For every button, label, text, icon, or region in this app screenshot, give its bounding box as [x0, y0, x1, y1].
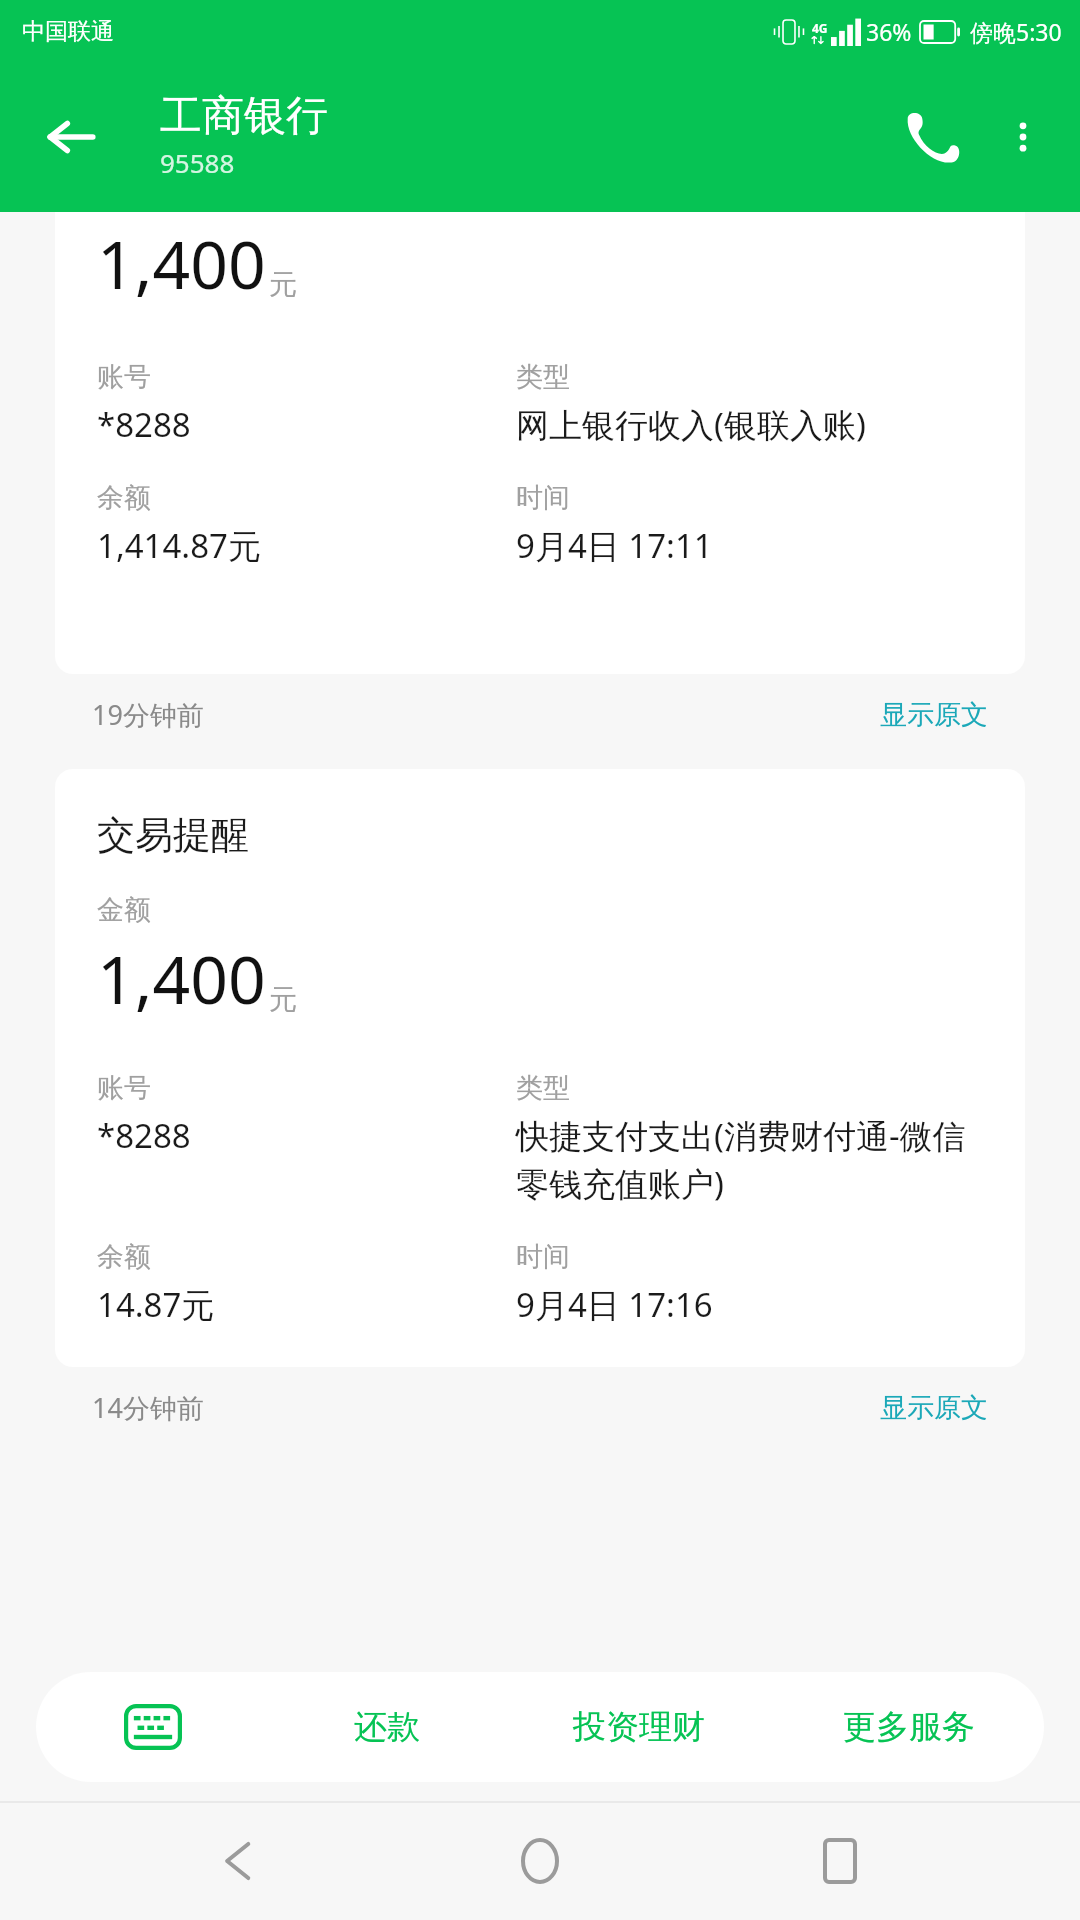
- staticText: 网上银行收入(银联入账): [516, 402, 866, 447]
- staticText: 投资理财: [573, 1706, 705, 1748]
- button[interactable]: Home: [480, 1802, 600, 1920]
- button[interactable]: 还款: [270, 1672, 504, 1782]
- button[interactable]: 投资理财: [504, 1672, 774, 1782]
- staticText: 9月4日 17:11: [516, 523, 713, 568]
- button[interactable]: More options: [980, 94, 1066, 180]
- staticText: 显示原文: [880, 698, 988, 732]
- staticText: 类型: [516, 1071, 570, 1105]
- staticText: 账号: [97, 360, 151, 394]
- staticText: 余额: [97, 481, 151, 515]
- staticText: 19分钟前: [92, 696, 204, 733]
- staticText: 元: [269, 982, 297, 1017]
- staticText: 14分钟前: [92, 1389, 204, 1426]
- staticText: 傍晚5:30: [970, 16, 1062, 47]
- staticText: 元: [269, 267, 297, 302]
- staticText: 更多服务: [843, 1706, 975, 1748]
- button[interactable]: Back: [28, 94, 114, 180]
- staticText: *8288: [97, 402, 191, 447]
- staticText: 1,400: [97, 933, 266, 1023]
- staticText: 95588: [160, 145, 235, 180]
- staticText: 类型: [516, 360, 570, 394]
- staticText: 金额: [97, 893, 151, 927]
- staticText: 1,414.87元: [97, 523, 261, 568]
- button[interactable]: Recent apps: [780, 1802, 900, 1920]
- staticText: 中国联通: [22, 17, 114, 46]
- button[interactable]: 显示原文: [880, 1391, 988, 1425]
- button[interactable]: Keyboard: [36, 1672, 270, 1782]
- staticText: 4G: [812, 20, 828, 36]
- staticText: 余额: [97, 1240, 151, 1274]
- staticText: 时间: [516, 481, 570, 515]
- button[interactable]: 更多服务: [774, 1672, 1044, 1782]
- staticText: 1,400: [97, 218, 266, 308]
- button[interactable]: Call: [884, 89, 980, 185]
- staticText: 工商银行: [160, 90, 328, 143]
- staticText: 显示原文: [880, 1391, 988, 1425]
- staticText: 还款: [354, 1706, 420, 1748]
- staticText: 账号: [97, 1071, 151, 1105]
- staticText: 36%: [866, 16, 912, 47]
- staticText: 9月4日 17:16: [516, 1282, 713, 1327]
- button[interactable]: 1,400: [55, 212, 1025, 674]
- staticText: 交易提醒: [97, 811, 249, 859]
- staticText: *8288: [97, 1113, 191, 1158]
- staticText: 快捷支付支出(消费财付通-微信零钱充值账户): [516, 1113, 989, 1206]
- button[interactable]: Back: [180, 1802, 300, 1920]
- button[interactable]: 交易提醒: [55, 769, 1025, 1367]
- button[interactable]: 显示原文: [880, 698, 988, 732]
- staticText: 时间: [516, 1240, 570, 1274]
- staticText: 14.87元: [97, 1282, 215, 1327]
